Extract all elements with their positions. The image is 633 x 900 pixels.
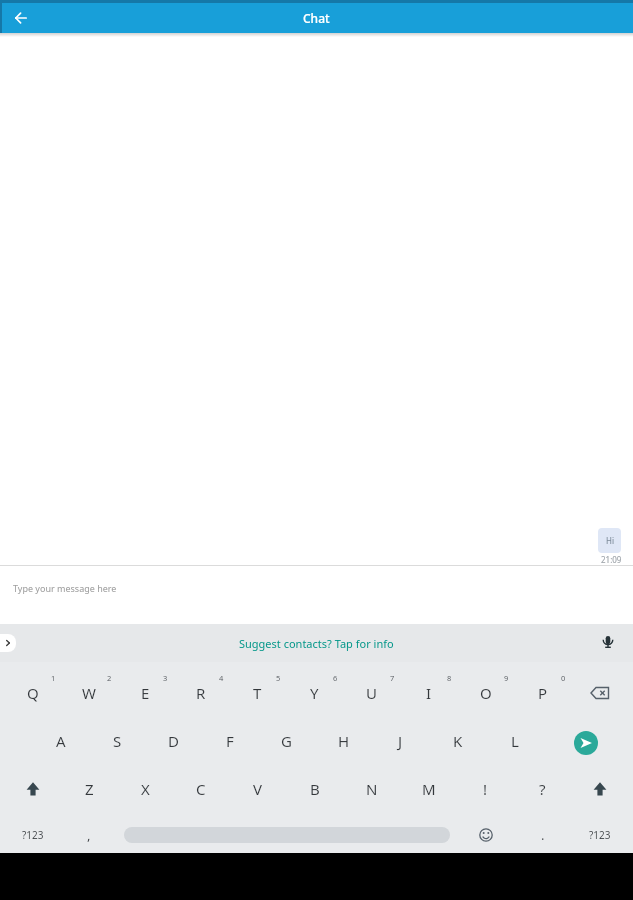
button[interactable]: T — [229, 669, 286, 716]
button[interactable]: E — [117, 669, 173, 716]
staticText: O — [480, 683, 492, 703]
staticText: H — [338, 731, 350, 751]
button[interactable]: Z — [61, 765, 117, 812]
staticText: Z — [85, 779, 94, 799]
button[interactable]: . — [514, 811, 571, 858]
button[interactable]: ! — [457, 765, 514, 812]
staticText: 0 — [561, 673, 566, 683]
staticText: 2 — [107, 673, 112, 683]
button[interactable]: W — [61, 669, 117, 716]
staticText: B — [310, 779, 320, 799]
staticText: L — [511, 731, 519, 751]
button[interactable]: R — [173, 669, 229, 716]
staticText: 6 — [333, 673, 338, 683]
button[interactable]: Q — [5, 669, 61, 716]
staticText: 4 — [219, 673, 224, 683]
staticText: W — [82, 683, 96, 703]
button[interactable]: P — [514, 669, 571, 716]
staticText: J — [398, 731, 403, 751]
button[interactable] — [457, 811, 514, 858]
button[interactable]: Suggest contacts? Tap for info — [239, 636, 394, 651]
staticText: V — [253, 779, 263, 799]
staticText: U — [366, 683, 377, 703]
staticText: R — [196, 683, 206, 703]
button[interactable]: L — [486, 717, 543, 764]
staticText: Suggest contacts? Tap for info — [239, 636, 394, 651]
staticText: X — [141, 779, 150, 799]
button[interactable] — [571, 765, 628, 812]
staticText: M — [422, 779, 436, 799]
staticText: . — [541, 826, 545, 844]
staticText: G — [281, 731, 292, 751]
button[interactable]: X — [117, 765, 173, 812]
button[interactable]: Hi — [598, 528, 621, 553]
staticText: , — [87, 826, 91, 844]
staticText: T — [253, 683, 262, 703]
button[interactable]: D — [145, 717, 201, 764]
button[interactable]: G — [258, 717, 315, 764]
button[interactable]: ?123 — [5, 811, 61, 858]
staticText: N — [366, 779, 378, 799]
staticText: 21:09 — [601, 554, 622, 565]
staticText: ? — [539, 779, 546, 799]
button[interactable]: , — [61, 811, 117, 858]
button[interactable]: Y — [286, 669, 343, 716]
button[interactable] — [0, 634, 16, 652]
button[interactable]: H — [315, 717, 372, 764]
button[interactable] — [599, 634, 617, 652]
button[interactable]: F — [201, 717, 258, 764]
button[interactable]: I — [400, 669, 457, 716]
staticText: Hi — [606, 535, 614, 546]
staticText: P — [538, 683, 548, 703]
staticText: Q — [27, 683, 39, 703]
staticText: 9 — [504, 673, 509, 683]
button[interactable]: Type your message here — [0, 566, 633, 624]
button[interactable]: N — [343, 765, 400, 812]
button[interactable] — [571, 669, 628, 716]
button[interactable]: M — [400, 765, 457, 812]
staticText: E — [141, 683, 150, 703]
staticText: 3 — [163, 673, 168, 683]
button[interactable]: S — [89, 717, 145, 764]
staticText: ?123 — [22, 828, 44, 842]
button[interactable]: C — [173, 765, 229, 812]
button[interactable] — [5, 765, 61, 812]
button[interactable] — [9, 6, 33, 30]
staticText: K — [453, 731, 463, 751]
button[interactable]: O — [457, 669, 514, 716]
staticText: ?123 — [589, 828, 611, 842]
staticText: A — [56, 731, 66, 751]
staticText: C — [196, 779, 206, 799]
staticText: ! — [483, 779, 488, 799]
button[interactable] — [543, 717, 628, 764]
button[interactable]: B — [286, 765, 343, 812]
button[interactable]: ? — [514, 765, 571, 812]
button[interactable]: V — [229, 765, 286, 812]
staticText: Type your message here — [13, 582, 117, 594]
staticText: 1 — [51, 673, 56, 683]
staticText: 7 — [390, 673, 395, 683]
button[interactable]: A — [33, 717, 89, 764]
staticText: D — [168, 731, 179, 751]
staticText: Chat — [303, 10, 330, 26]
staticText: 5 — [276, 673, 281, 683]
button[interactable]: J — [372, 717, 429, 764]
staticText: I — [426, 683, 432, 703]
staticText: F — [226, 731, 234, 751]
staticText: Y — [310, 683, 319, 703]
staticText: S — [113, 731, 122, 751]
button[interactable]: ?123 — [571, 811, 628, 858]
button[interactable]: K — [429, 717, 486, 764]
button[interactable]: U — [343, 669, 400, 716]
staticText: 8 — [447, 673, 452, 683]
